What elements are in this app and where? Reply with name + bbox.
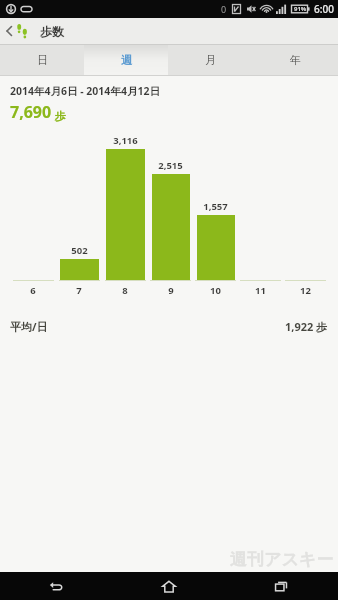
staticText: 91% bbox=[294, 5, 307, 13]
staticText: 6 bbox=[30, 284, 36, 297]
staticText: 歩 bbox=[55, 109, 66, 123]
staticText: 歩数 bbox=[40, 24, 64, 39]
button[interactable]: 年 bbox=[253, 45, 338, 75]
button[interactable]: Recents bbox=[225, 572, 338, 600]
staticText: 10 bbox=[210, 284, 221, 297]
staticText: 1,922 歩 bbox=[285, 319, 328, 334]
staticText: 年 bbox=[290, 53, 301, 67]
button[interactable]: 月 bbox=[168, 45, 253, 75]
staticText: 月 bbox=[205, 53, 216, 67]
staticText: 週 bbox=[121, 53, 132, 67]
staticText: 8 bbox=[122, 284, 128, 297]
staticText: 3,116 bbox=[113, 134, 138, 147]
staticText: 週刊アスキー bbox=[230, 549, 334, 570]
button[interactable]: Back bbox=[0, 18, 32, 44]
staticText: 7 bbox=[76, 284, 82, 297]
button[interactable]: 日 bbox=[0, 45, 84, 75]
staticText: 9 bbox=[168, 284, 174, 297]
button[interactable]: Home bbox=[112, 572, 225, 600]
button[interactable]: 週 bbox=[84, 45, 168, 75]
staticText: 12 bbox=[300, 284, 311, 297]
button[interactable]: Back bbox=[0, 572, 112, 600]
staticText: 7,690 bbox=[10, 101, 52, 123]
staticText: 2,515 bbox=[158, 159, 183, 172]
staticText: 日 bbox=[37, 53, 48, 67]
staticText: 0 bbox=[221, 3, 227, 15]
staticText: 2014年4月6日 - 2014年4月12日 bbox=[10, 84, 160, 98]
staticText: 502 bbox=[71, 244, 88, 257]
staticText: 1,557 bbox=[203, 200, 228, 213]
staticText: 6:00 bbox=[314, 2, 334, 16]
staticText: 11 bbox=[255, 284, 266, 297]
staticText: 平均/日 bbox=[10, 319, 48, 334]
